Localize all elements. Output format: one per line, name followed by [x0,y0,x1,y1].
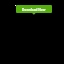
button[interactable]: Download Now [16,5,52,13]
staticText: Download Now [22,8,46,12]
